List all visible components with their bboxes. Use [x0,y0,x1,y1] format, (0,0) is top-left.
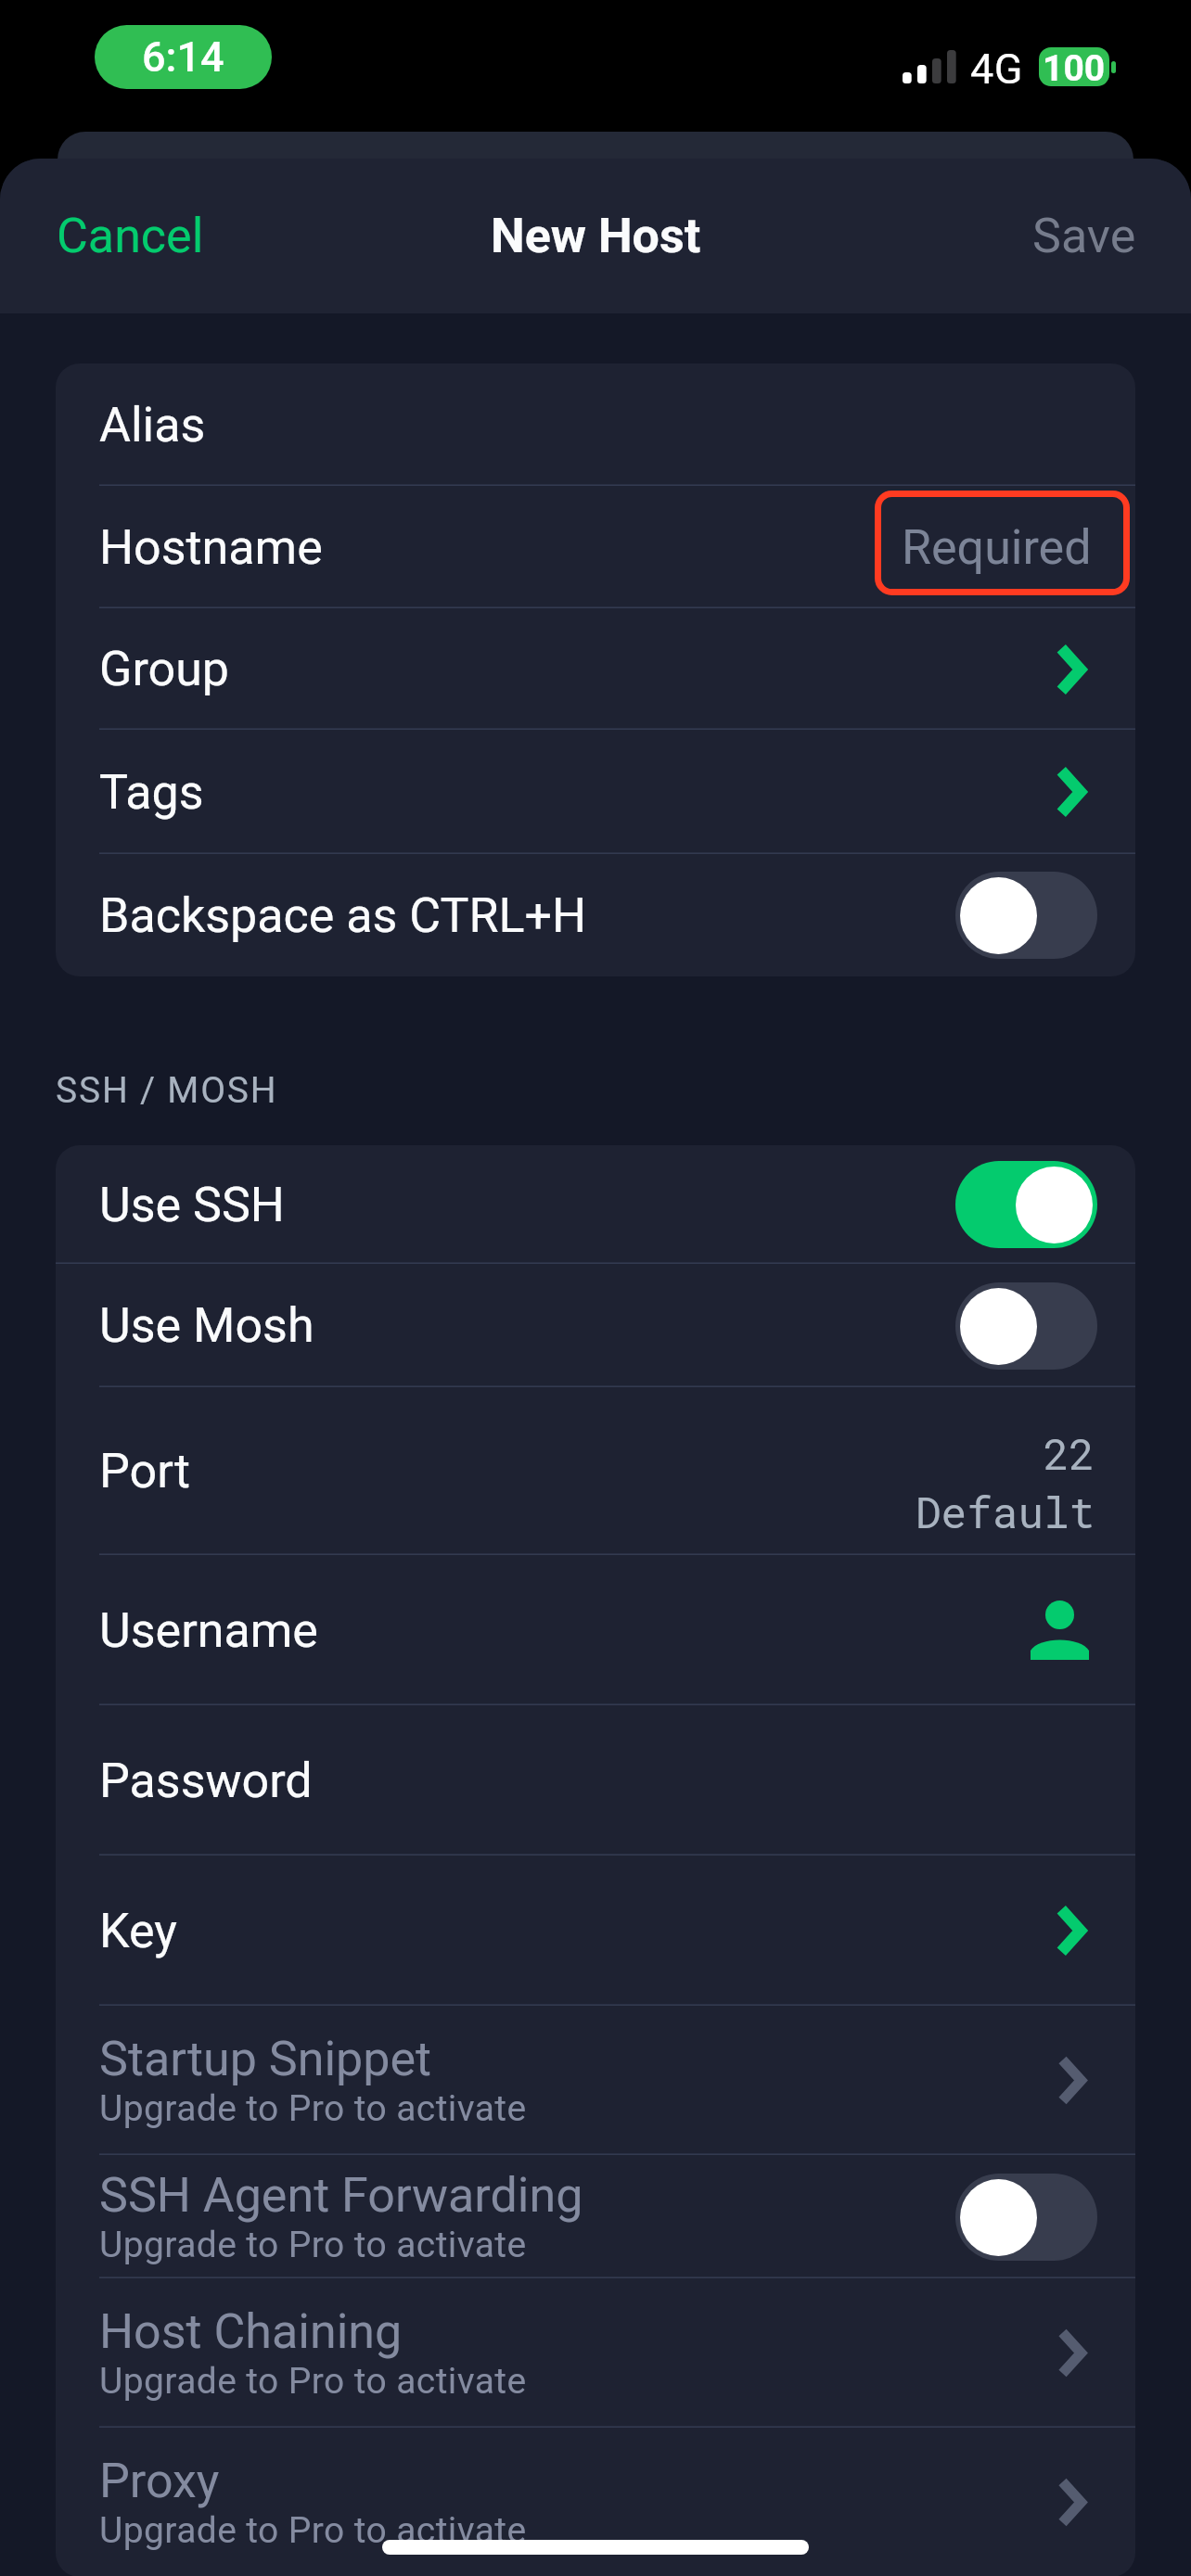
staticText: Tags [99,764,204,821]
staticText: 22 [1044,1425,1095,1482]
other: Pick username [1031,1600,1089,1660]
staticText: Password [99,1753,313,1809]
button[interactable]: SSH Agent Forwarding [56,2155,1135,2278]
button[interactable]: Host Chaining [56,2278,1135,2428]
button[interactable]: Use Mosh [56,1264,1135,1387]
staticText: Upgrade to Pro to activate [99,2224,527,2266]
button[interactable]: Toggle off [955,872,1097,959]
staticText: Default [916,1484,1095,1540]
staticText: Startup Snippet [99,2031,432,2087]
staticText: Key [99,1903,177,1959]
button[interactable]: Username [56,1555,1135,1705]
button[interactable]: Startup Snippet [56,2006,1135,2155]
staticText: Backspace as CTRL+H [99,887,587,944]
button[interactable]: Password [56,1705,1135,1855]
staticText: Host Chaining [99,2303,403,2360]
staticText: Required [902,519,1092,576]
button[interactable]: Hostname [56,486,1135,608]
staticText: 100 [1043,47,1106,86]
button[interactable]: Key [56,1855,1135,2006]
staticText: Use SSH [99,1177,285,1233]
staticText: Upgrade to Pro to activate [99,2087,527,2130]
button[interactable]: Port [56,1387,1135,1555]
button[interactable]: Use SSH [56,1145,1135,1264]
staticText: New Host [491,208,701,264]
staticText: Username [99,1602,318,1659]
staticText: 6:14 [142,32,224,82]
staticText: Save [1032,208,1136,264]
staticText: 4G [970,45,1023,94]
button[interactable]: Alias [56,363,1135,486]
button[interactable]: Toggle off [955,2174,1097,2261]
staticText: Alias [99,397,206,453]
button[interactable]: Group [56,608,1135,730]
staticText: Hostname [99,519,323,576]
staticText: SSH / MOSH [56,1069,278,1112]
button[interactable]: Backspace as CTRL+H [56,854,1135,976]
button[interactable]: Toggle off [955,1282,1097,1370]
staticText: Upgrade to Pro to activate [99,2509,527,2552]
staticText: SSH Agent Forwarding [99,2167,583,2224]
staticText: Upgrade to Pro to activate [99,2360,527,2403]
button[interactable]: Proxy [56,2428,1135,2576]
staticText: Use Mosh [99,1297,314,1354]
button[interactable]: Tags [56,730,1135,854]
button[interactable]: Save [1010,159,1191,313]
staticText: Port [99,1443,191,1499]
staticText: Proxy [99,2453,220,2509]
staticText: Group [99,641,230,697]
staticText: Cancel [57,208,204,264]
button[interactable]: Cancel [0,159,226,313]
button[interactable]: Toggle on [955,1161,1097,1248]
